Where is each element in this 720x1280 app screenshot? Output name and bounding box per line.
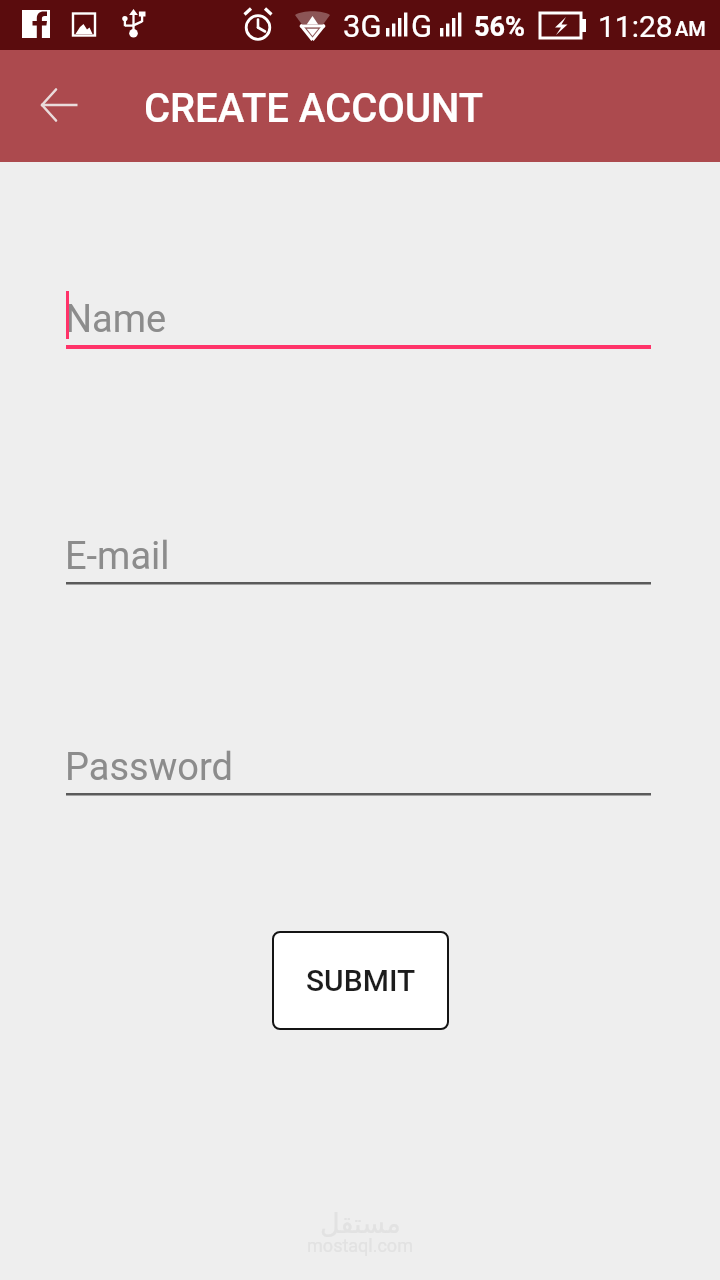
staticText: E-mail (65, 534, 170, 579)
staticText: AM (675, 17, 706, 40)
button[interactable]: Password (66, 737, 651, 797)
button[interactable]: SUBMIT (272, 931, 449, 1030)
staticText: 3G (343, 8, 382, 44)
staticText: SUBMIT (306, 963, 416, 998)
button[interactable]: Name (66, 289, 651, 349)
staticText: Name (65, 297, 167, 342)
staticText: مستقل (320, 1208, 401, 1239)
button[interactable]: Back (16, 81, 66, 131)
staticText: Password (65, 745, 233, 790)
staticText: 56% (474, 11, 525, 43)
staticText: CREATE ACCOUNT (144, 85, 484, 132)
staticText: mostaql.com (307, 1235, 413, 1256)
button[interactable]: E-mail (66, 526, 651, 586)
staticText: G (411, 8, 433, 44)
staticText: 11:28 (598, 9, 673, 44)
